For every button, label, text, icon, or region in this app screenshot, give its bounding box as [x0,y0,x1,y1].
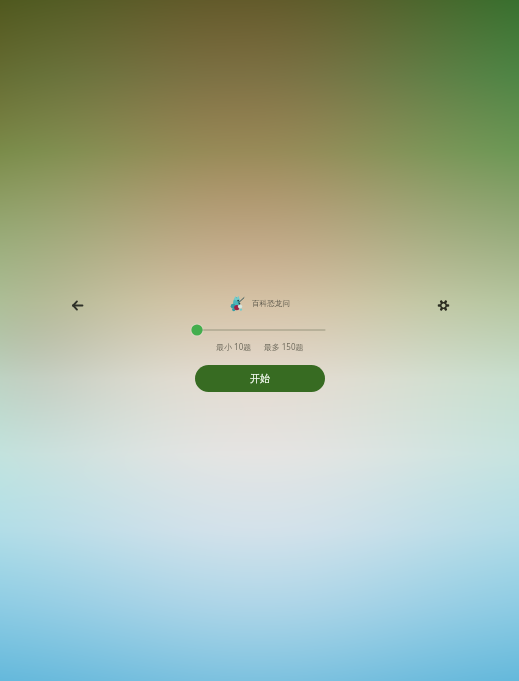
button[interactable] [194,324,326,336]
staticText: 开始 [250,372,270,385]
button[interactable]: Back [63,291,91,319]
staticText: 最小 10题 最多 150题 [216,341,304,352]
staticText: 百科恐龙问 [252,299,290,309]
button[interactable]: Settings [429,291,457,319]
button[interactable]: 开始 [195,365,325,392]
